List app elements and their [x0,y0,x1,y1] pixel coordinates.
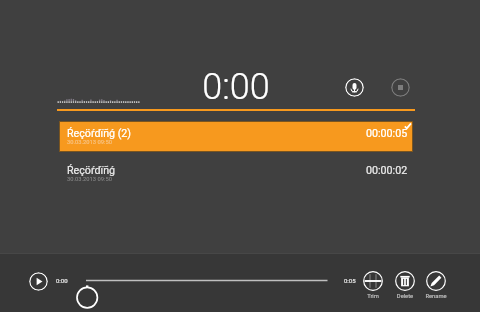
staticText: 00:00:05 [366,127,408,140]
staticText: 0:05 [344,277,356,284]
button[interactable]: Play [29,272,48,291]
button[interactable]: Trim [358,271,388,300]
button[interactable]: Rename [421,271,451,300]
staticText: 0:00 [196,66,276,108]
button[interactable]: Ŕeçöŕdïñǵ (2) [59,121,413,152]
button[interactable]: Delete [390,271,420,300]
staticText: 0:00 [56,277,68,284]
staticText: 30.03.2013 09:50 [67,139,112,146]
staticText: Trim [358,293,388,300]
button[interactable]: Record [345,78,364,97]
button[interactable]: Stop [391,78,410,97]
button[interactable]: Ŕeçöŕdïñǵ [59,158,413,189]
staticText: Ŕeçöŕdïñǵ (2) [67,127,132,140]
staticText: Rename [421,293,451,300]
button[interactable]: Seek position [74,273,329,312]
staticText: Delete [390,293,420,300]
staticText: 00:00:02 [366,164,408,177]
staticText: Ŕeçöŕdïñǵ [67,164,116,177]
staticText: 30.03.2013 09:50 [67,176,112,183]
